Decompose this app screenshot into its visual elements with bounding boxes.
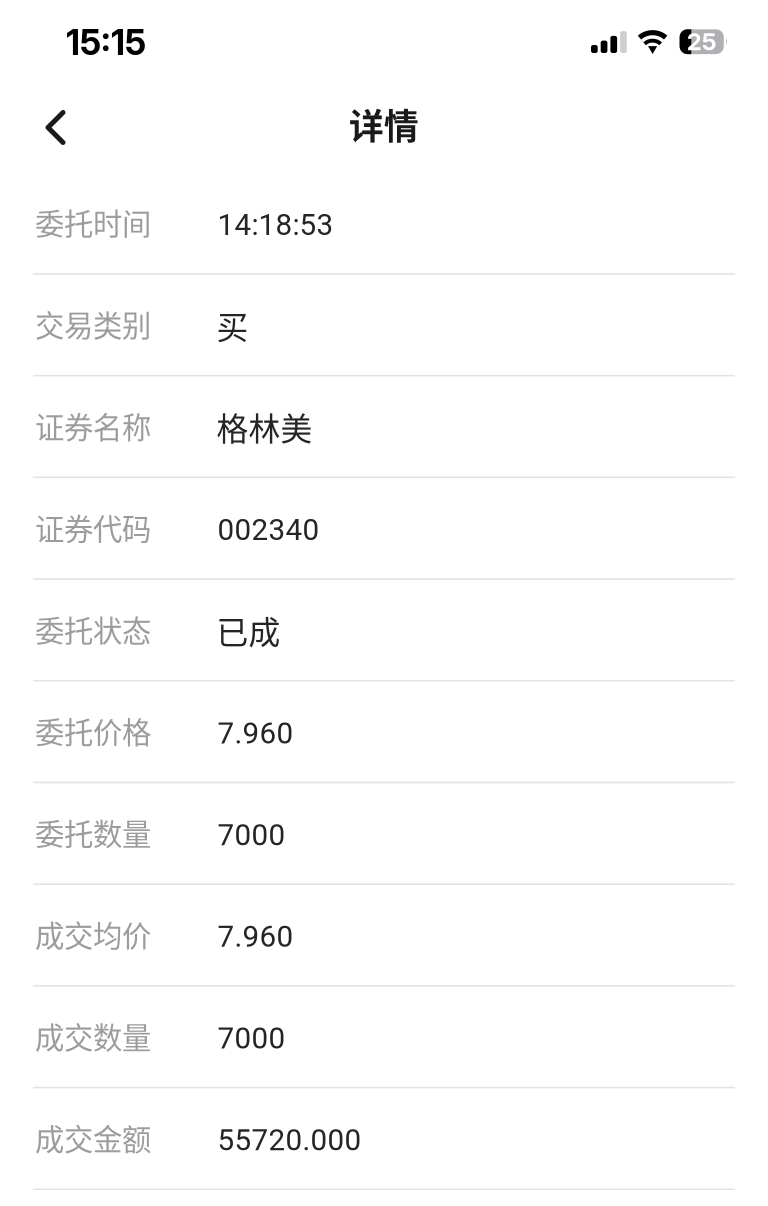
staticText: 成交数量 [35,1014,151,1057]
staticText: 买 [216,302,248,348]
staticText: 详情 [349,99,419,149]
staticText: 证券名称 [35,404,151,447]
staticText: 委托价格 [35,709,151,752]
staticText: 证券代码 [35,506,151,548]
staticText: 7.960 [217,716,293,751]
staticText: 14:18:53 [217,207,333,242]
staticText: 25 [687,27,717,56]
staticText: 7000 [217,818,285,852]
staticText: 7.960 [217,919,293,954]
staticText: 格林美 [216,404,312,450]
button[interactable]: Back [24,97,86,159]
staticText: 委托时间 [35,201,151,243]
staticText: 15:15 [66,21,146,63]
staticText: 已成 [216,607,280,653]
staticText: 委托状态 [35,608,151,650]
staticText: 55720.000 [217,1123,361,1157]
staticText: 7000 [217,1021,285,1056]
staticText: 002340 [217,513,319,547]
staticText: 成交均价 [35,913,151,955]
staticText: 委托数量 [35,811,151,853]
staticText: 成交金额 [35,1116,151,1159]
staticText: 交易类别 [35,302,151,345]
